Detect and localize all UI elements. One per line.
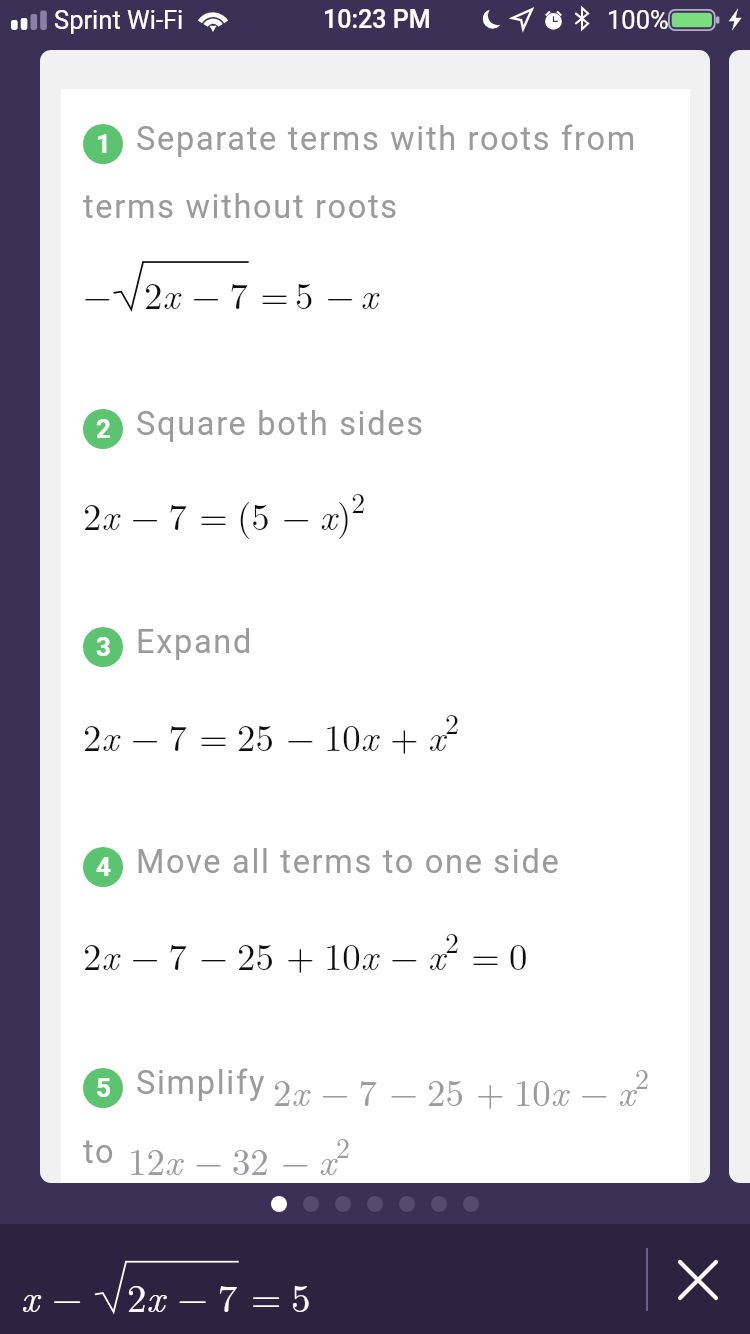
staticText: − <box>83 268 112 320</box>
button[interactable] <box>399 1196 415 1212</box>
button[interactable]: 1 <box>40 50 710 1183</box>
staticText: Expand <box>136 623 253 661</box>
staticText: = 5 − x <box>248 268 378 320</box>
staticText: 2x − 7 <box>127 1268 238 1323</box>
staticText: 2x − 7 = 25 − 10x + x2 <box>83 702 459 762</box>
staticText: 2x − 7 − 25 + 10x − x2 = 0 <box>83 921 528 981</box>
staticText: x − <box>21 1268 93 1323</box>
staticText: terms without roots <box>83 188 399 226</box>
staticText: Square both sides <box>136 405 425 443</box>
staticText: = 5 <box>238 1268 311 1323</box>
staticText: 10:23 PM <box>323 5 431 34</box>
staticText: 4 <box>96 852 111 882</box>
staticText: 2 <box>96 414 111 444</box>
button[interactable] <box>335 1196 351 1212</box>
button[interactable] <box>463 1196 479 1212</box>
staticText: to <box>83 1133 126 1171</box>
staticText: 5 <box>96 1073 111 1103</box>
staticText: Move all terms to one side <box>136 843 561 881</box>
staticText: 2x − 7 − 25 + 10x − x2 <box>273 1057 649 1117</box>
staticText: 2x − 7 = (5 − x)2 <box>83 481 366 541</box>
staticText: 100% <box>607 5 669 35</box>
staticText: Sprint Wi-Fi <box>54 5 184 35</box>
staticText: Separate terms with roots from <box>136 120 637 158</box>
staticText: 2x − 7 <box>144 268 248 320</box>
button[interactable] <box>367 1196 383 1212</box>
button[interactable] <box>271 1196 287 1212</box>
staticText: 3 <box>96 632 111 662</box>
button[interactable] <box>303 1196 319 1212</box>
staticText: 1 <box>96 129 111 159</box>
button[interactable]: Close <box>668 1250 728 1310</box>
button[interactable] <box>431 1196 447 1212</box>
staticText: 12x − 32 − x2 <box>128 1126 350 1183</box>
staticText: Simplify <box>136 1064 276 1102</box>
